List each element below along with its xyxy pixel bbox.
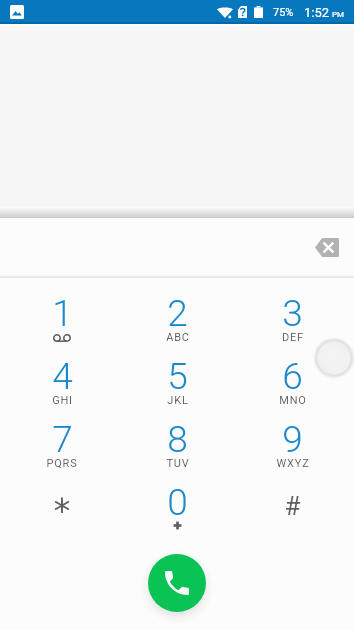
button[interactable]: # (235, 481, 350, 544)
button[interactable]: 7 (4, 418, 120, 481)
button[interactable]: 3 (235, 292, 350, 355)
staticText: 2 (167, 292, 188, 335)
button[interactable]: Backspace (306, 227, 347, 268)
staticText: 4 (52, 355, 73, 398)
staticText: 5 (167, 355, 188, 398)
button[interactable]: 4 (4, 355, 120, 418)
staticText: # (284, 491, 301, 521)
staticText: 8 (167, 418, 188, 461)
staticText: 1 (52, 292, 73, 335)
staticText: 75% (273, 6, 294, 19)
staticText: 7 (52, 418, 73, 461)
button[interactable]: 6 (235, 355, 350, 418)
staticText: WXYZ (276, 457, 310, 470)
staticText: PM (332, 10, 345, 19)
staticText: 6 (282, 355, 303, 398)
staticText: 0 (167, 481, 188, 524)
button[interactable]: 9 (235, 418, 350, 481)
staticText: PQRS (46, 457, 78, 470)
staticText: JKL (167, 394, 189, 407)
staticText: ABC (166, 331, 190, 344)
staticText: DEF (282, 331, 304, 344)
button[interactable]: 5 (120, 355, 235, 418)
staticText: MNO (279, 394, 307, 407)
staticText: TUV (166, 457, 190, 470)
staticText: 9 (282, 418, 303, 461)
button[interactable]: 0 (120, 481, 235, 544)
button[interactable]: 8 (120, 418, 235, 481)
button[interactable]: 2 (120, 292, 235, 355)
button[interactable]: 1 (4, 292, 120, 355)
button[interactable] (4, 481, 120, 544)
staticText: 1:52 (304, 5, 330, 20)
button[interactable]: Call (148, 554, 206, 612)
staticText: GHI (52, 394, 73, 407)
staticText: 3 (282, 292, 303, 335)
